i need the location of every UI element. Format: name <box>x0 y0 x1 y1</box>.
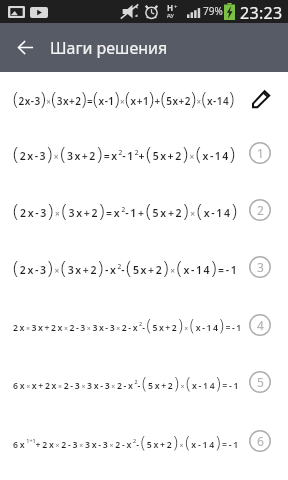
button[interactable]: Step 1 <box>246 139 274 167</box>
button[interactable]: (2x-3)×(3x+2)-x2-(5x+2)×(x-14)=-1 <box>0 238 288 296</box>
button[interactable]: Edit <box>252 81 286 115</box>
staticText: 1 <box>257 145 264 161</box>
button[interactable]: Step 3 <box>246 253 274 281</box>
button[interactable]: (2x-3)×(3x+2)=(x-1)×(x+1)+(5x+2)×(x-14) <box>0 72 288 124</box>
staticText: + <box>174 3 178 11</box>
staticText: 4 <box>257 317 264 333</box>
staticText: 2x×3x+2x×2-3×3x-3×2-x2-(5x+2)×(x-14)=-1 <box>13 314 243 335</box>
staticText: (2x-3)×(3x+2)=(x-1)×(x+1)+(5x+2)×(x-14) <box>13 86 235 111</box>
button[interactable]: (2x-3)×(3x+2)=x2-12+(5x+2)×(x-14) <box>0 124 288 181</box>
staticText: 23:23 <box>240 2 283 24</box>
staticText: 6 <box>257 433 264 449</box>
staticText: H <box>167 2 174 13</box>
button[interactable]: 6x×x+2x×2-3×3x-3×2-x2-(5x+2)×(x-14)=-1 <box>0 353 288 411</box>
button[interactable]: Step 5 <box>246 368 274 396</box>
staticText: 2 <box>257 202 264 218</box>
staticText: 5 <box>257 374 264 390</box>
staticText: (2x-3)×(3x+2)=x2-12+(5x+2)×(x-14) <box>13 140 237 166</box>
staticText: ду <box>167 11 174 19</box>
staticText: 3 <box>257 259 264 275</box>
staticText: (2x-3)×(3x+2)-x2-(5x+2)×(x-14)=-1 <box>13 254 239 280</box>
button[interactable]: Back <box>0 23 50 72</box>
button[interactable]: (2x-3)×(3x+2)=x2-1+(5x+2)×(x-14) <box>0 181 288 238</box>
staticText: 6x×x+2x×2-3×3x-3×2-x2-(5x+2)×(x-14)=-1 <box>13 372 241 393</box>
button[interactable]: 2x×3x+2x×2-3×3x-3×2-x2-(5x+2)×(x-14)=-1 <box>0 296 288 353</box>
button[interactable]: Step 6 <box>246 427 274 455</box>
button[interactable]: 6x1+1+2x×2-3×3x-3×2-x2-(5x+2)×(x-14)=-1 <box>0 411 288 471</box>
button[interactable]: Step 2 <box>246 196 274 224</box>
button[interactable]: Step 4 <box>246 311 274 339</box>
staticText: 79% <box>203 4 223 18</box>
staticText: 6x1+1+2x×2-3×3x-3×2-x2-(5x+2)×(x-14)=-1 <box>13 431 240 452</box>
staticText: (2x-3)×(3x+2)=x2-1+(5x+2)×(x-14) <box>13 197 239 223</box>
staticText: Шаги решения <box>50 37 168 59</box>
